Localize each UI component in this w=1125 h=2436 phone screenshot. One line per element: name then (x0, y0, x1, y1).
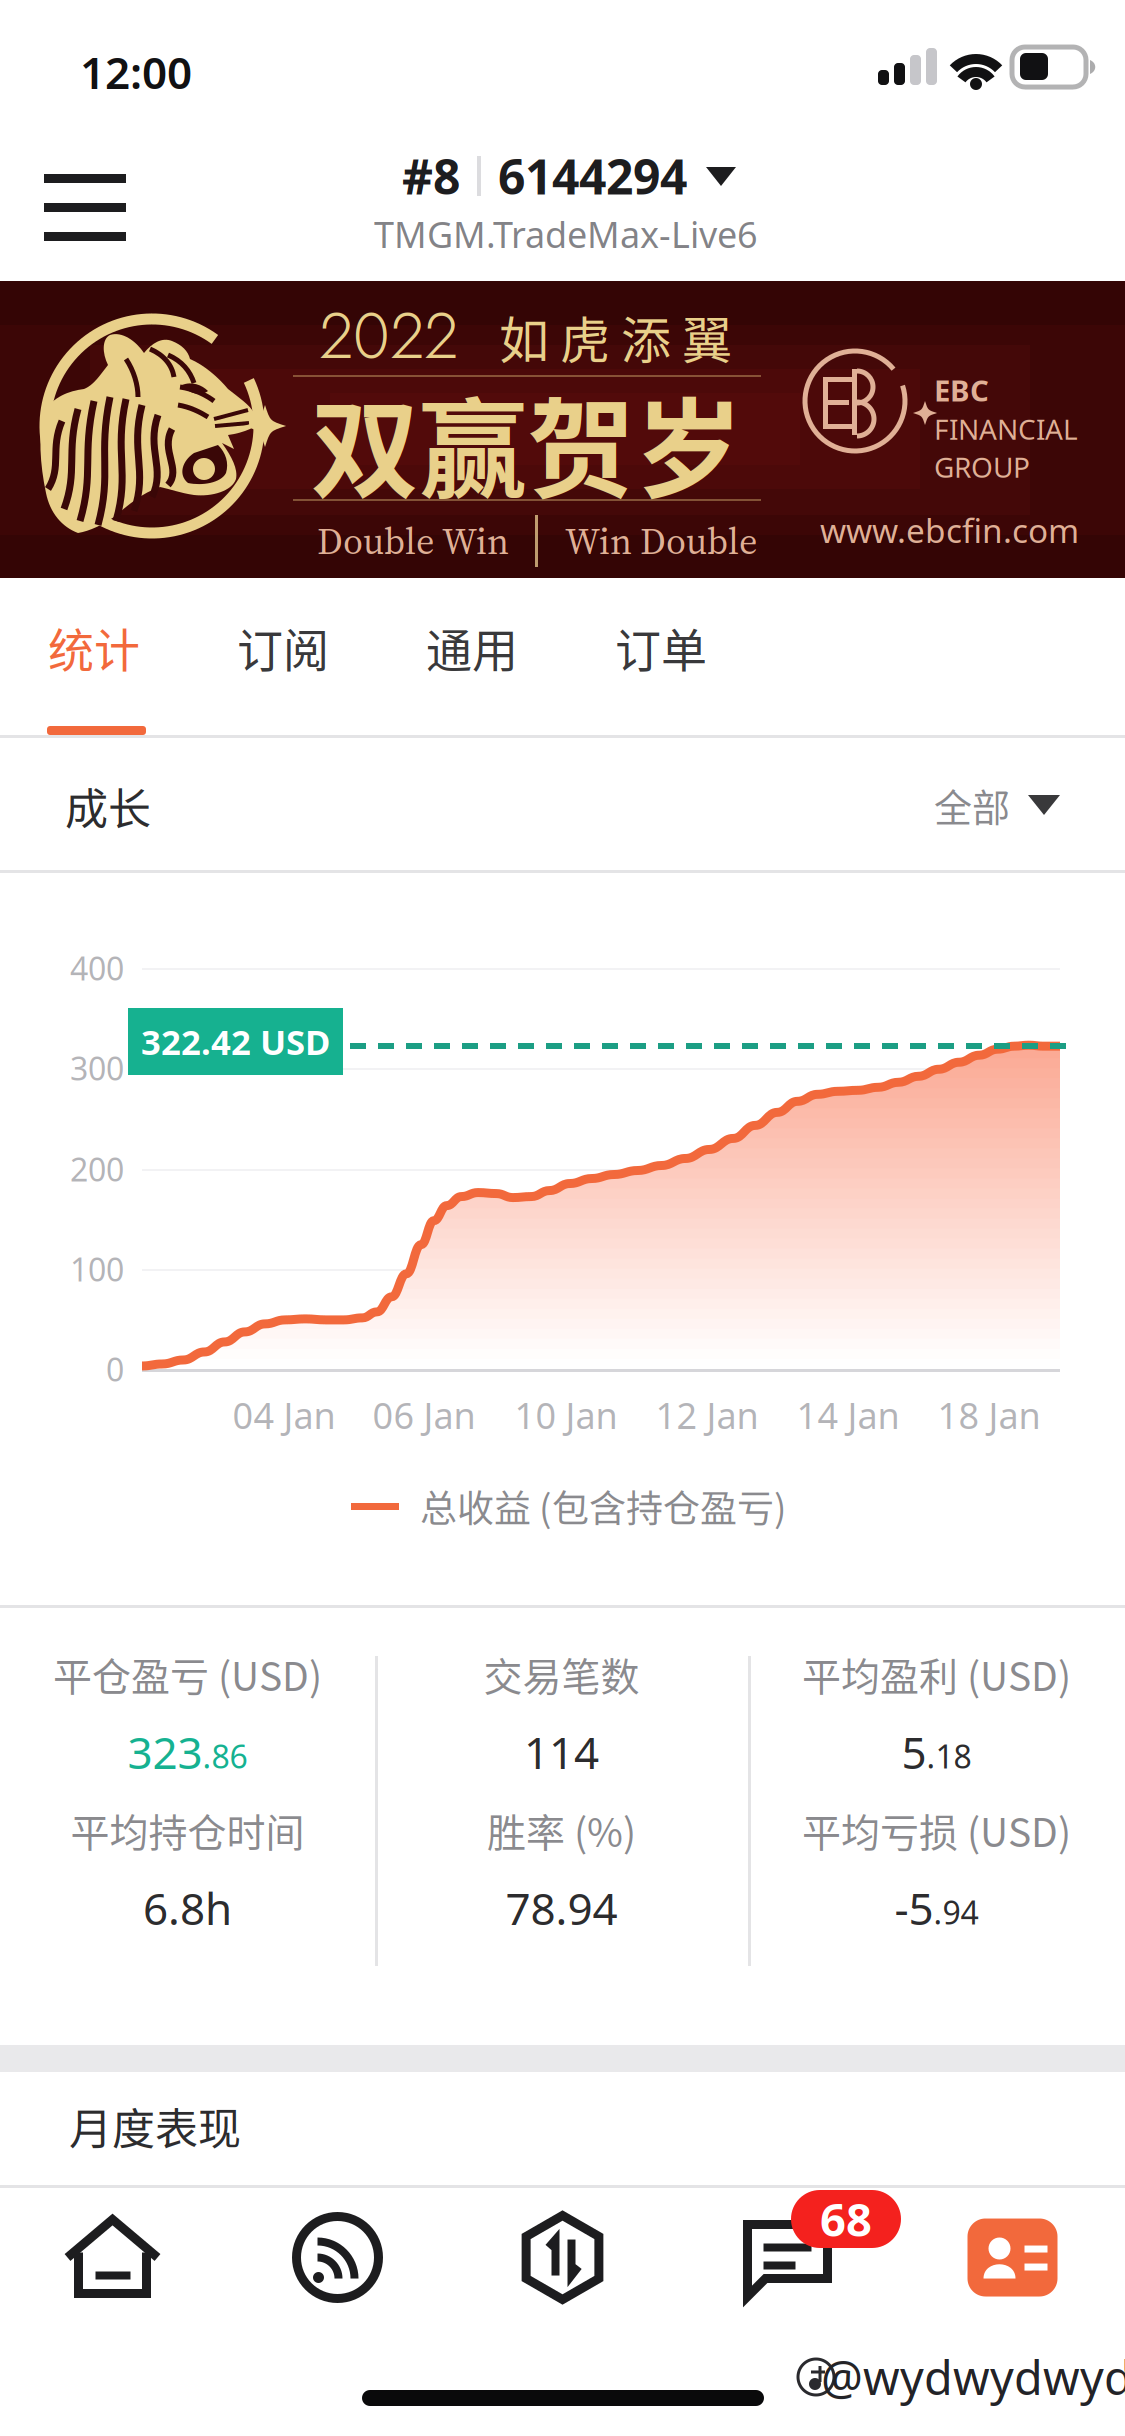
staticText: 6144294 (498, 144, 687, 208)
button[interactable]: 全部 (870, 750, 1100, 860)
button[interactable]: 订阅 (189, 578, 377, 735)
staticText: 200 (70, 1148, 124, 1190)
staticText: 胜率 (%) (487, 1802, 636, 1858)
staticText: .94 (933, 1891, 978, 1933)
staticText: 总收益 (包含持仓盈亏) (420, 1479, 787, 1533)
button[interactable]: Messages (675, 2185, 900, 2330)
button[interactable]: Trade (450, 2185, 675, 2330)
button[interactable]: Signals (225, 2185, 450, 2330)
staticText: .86 (202, 1735, 247, 1777)
button[interactable]: Accounts (900, 2185, 1125, 2330)
staticText: 5 (901, 1723, 926, 1781)
staticText: 6.8h (143, 1879, 232, 1937)
staticText: TMGM.TradeMax-Live6 (374, 210, 758, 258)
staticText: .18 (926, 1735, 971, 1777)
staticText: www.ebcfin.com (820, 508, 1079, 552)
staticText: Win Double (565, 516, 758, 566)
button[interactable]: #8 (350, 140, 810, 276)
staticText: 323 (127, 1723, 202, 1781)
button[interactable]: 通用 (378, 578, 566, 735)
staticText: 0 (106, 1348, 124, 1390)
staticText: 14 Jan (796, 1391, 899, 1439)
staticText: 06 Jan (372, 1391, 475, 1439)
staticText: EBC (934, 370, 989, 409)
staticText: 通用 (426, 614, 518, 680)
staticText: 统计 (48, 614, 140, 680)
button[interactable]: Menu (0, 136, 170, 278)
staticText: 12 Jan (655, 1391, 758, 1439)
staticText: 如 虎 添 翼 (499, 301, 732, 373)
staticText: 78.94 (505, 1879, 617, 1937)
staticText: 成长 (65, 775, 151, 837)
button[interactable]: 统计 (0, 578, 188, 735)
staticText: 平仓盈亏 (USD) (53, 1646, 322, 1702)
staticText: Double Win (317, 516, 509, 566)
staticText: @wydwydwyd (821, 2346, 1125, 2408)
staticText: 322.42 USD (141, 1018, 330, 1064)
staticText: 10 Jan (514, 1391, 617, 1439)
staticText: 平均盈利 (USD) (802, 1646, 1071, 1702)
staticText: 100 (70, 1248, 124, 1290)
staticText: 300 (70, 1047, 124, 1089)
staticText: 双赢贺岁 (311, 364, 743, 520)
staticText: 114 (524, 1723, 599, 1781)
staticText: GROUP (934, 448, 1030, 486)
staticText: 12:00 (80, 43, 192, 101)
button[interactable]: 订单 (567, 578, 755, 735)
staticText: 平均亏损 (USD) (802, 1802, 1071, 1858)
staticText: 交易笔数 (483, 1646, 639, 1702)
staticText: 订阅 (237, 614, 329, 680)
staticText: 月度表现 (69, 2095, 241, 2157)
staticText: 68 (820, 2189, 872, 2249)
staticText: -5 (894, 1879, 933, 1937)
staticText: 平均持仓时间 (70, 1802, 304, 1858)
staticText: 04 Jan (232, 1391, 335, 1439)
button[interactable]: Quotes (0, 2185, 225, 2330)
staticText: FINANCIAL (934, 410, 1078, 448)
staticText: 订单 (615, 614, 707, 680)
staticText: 全部 (934, 777, 1010, 832)
staticText: 400 (70, 947, 124, 989)
staticText: #8 (402, 144, 460, 208)
staticText: 18 Jan (937, 1391, 1040, 1439)
staticText: 2022 (319, 290, 458, 381)
